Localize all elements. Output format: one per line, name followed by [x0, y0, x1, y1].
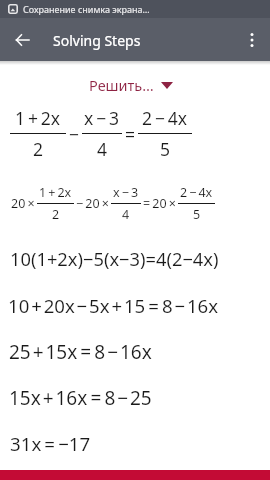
staticText: x − 3: [84, 106, 120, 130]
button[interactable]: Решить…: [83, 71, 179, 99]
staticText: 5: [160, 137, 171, 161]
button[interactable]: Back: [6, 18, 38, 61]
staticText: 25 + 15x = 8 − 16x: [9, 339, 152, 365]
staticText: 31x = −17: [10, 431, 91, 456]
staticText: = 20 ×: [141, 195, 178, 212]
staticText: 2: [33, 137, 44, 161]
staticText: 10 + 20x − 5x + 15 = 8 − 16x: [8, 293, 219, 318]
staticText: 2 − 4x: [180, 184, 213, 201]
staticText: −: [66, 122, 82, 146]
staticText: 2: [52, 206, 60, 223]
staticText: Solving Steps: [53, 31, 141, 50]
staticText: Сохранение снимка экрана…: [23, 3, 150, 15]
staticText: 2 − 4x: [142, 106, 188, 130]
staticText: =: [122, 122, 138, 146]
staticText: 1 + 2x: [15, 106, 61, 130]
staticText: x − 3: [113, 184, 139, 201]
staticText: 10(1+2x)−5(x−3)=4(2−4x): [10, 246, 219, 271]
staticText: 5: [193, 206, 201, 223]
button[interactable]: More options: [234, 18, 270, 61]
staticText: 15x + 16x = 8 − 25: [9, 385, 152, 411]
staticText: − 20 ×: [74, 195, 111, 212]
staticText: Решить…: [89, 75, 154, 95]
staticText: 4: [122, 206, 130, 223]
staticText: 1 + 2x: [39, 184, 72, 201]
staticText: 4: [97, 137, 108, 161]
staticText: 20 ×: [11, 195, 37, 212]
